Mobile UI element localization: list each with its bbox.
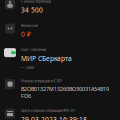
- button[interactable]: Счёт списания: [0, 43, 120, 74]
- button[interactable]: Комиссия: [0, 18, 120, 43]
- staticText: 29.03.2023 16:39:18: [21, 115, 87, 120]
- staticText: Комиссия: [21, 22, 38, 28]
- staticText: Дата и время операции (МСК): [21, 108, 75, 113]
- button[interactable]: Дата и время операции (МСК): [0, 104, 120, 120]
- staticText: МИР СБеркарта: [21, 54, 72, 63]
- staticText: Счёт списания: [21, 47, 46, 52]
- button[interactable]: Сумма перевода: [0, 0, 120, 18]
- staticText: 0 ₽: [21, 30, 31, 39]
- staticText: B2OB01327M13260BO30031A54B19FO6: [21, 85, 109, 100]
- staticText: Сумма перевода: [21, 0, 51, 4]
- staticText: 34 500: [21, 6, 43, 14]
- staticText: Номер операции в СБП: [21, 78, 62, 83]
- staticText: •• 3488: [21, 65, 34, 70]
- button[interactable]: Номер операции в СБП: [0, 74, 120, 104]
